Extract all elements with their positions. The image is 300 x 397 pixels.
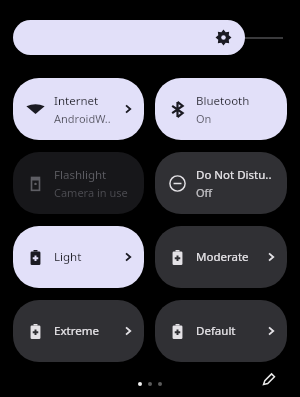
button[interactable]: Bluetooth xyxy=(155,78,287,140)
button[interactable]: Flashlight xyxy=(13,152,144,214)
button[interactable]: Light xyxy=(13,226,144,288)
staticText: AndroidW.. xyxy=(54,111,111,126)
staticText: Off xyxy=(196,185,213,200)
staticText: Flashlight xyxy=(54,167,107,183)
staticText: Camera in use xyxy=(54,185,128,200)
button[interactable]: Edit tiles xyxy=(256,366,282,392)
staticText: Light xyxy=(54,249,82,265)
button[interactable]: Extreme xyxy=(13,300,144,362)
button[interactable]: Brightness xyxy=(13,20,287,55)
button[interactable]: Default xyxy=(155,300,287,362)
staticText: Moderate xyxy=(196,249,249,265)
button[interactable]: Internet xyxy=(13,78,144,140)
button[interactable]: Moderate xyxy=(155,226,287,288)
staticText: Default xyxy=(196,323,236,339)
staticText: On xyxy=(196,111,212,126)
staticText: Internet xyxy=(54,93,99,109)
button[interactable]: Do Not Distu.. xyxy=(155,152,287,214)
staticText: Bluetooth xyxy=(196,93,250,109)
staticText: Do Not Distu.. xyxy=(196,167,272,183)
staticText: Extreme xyxy=(54,323,99,339)
